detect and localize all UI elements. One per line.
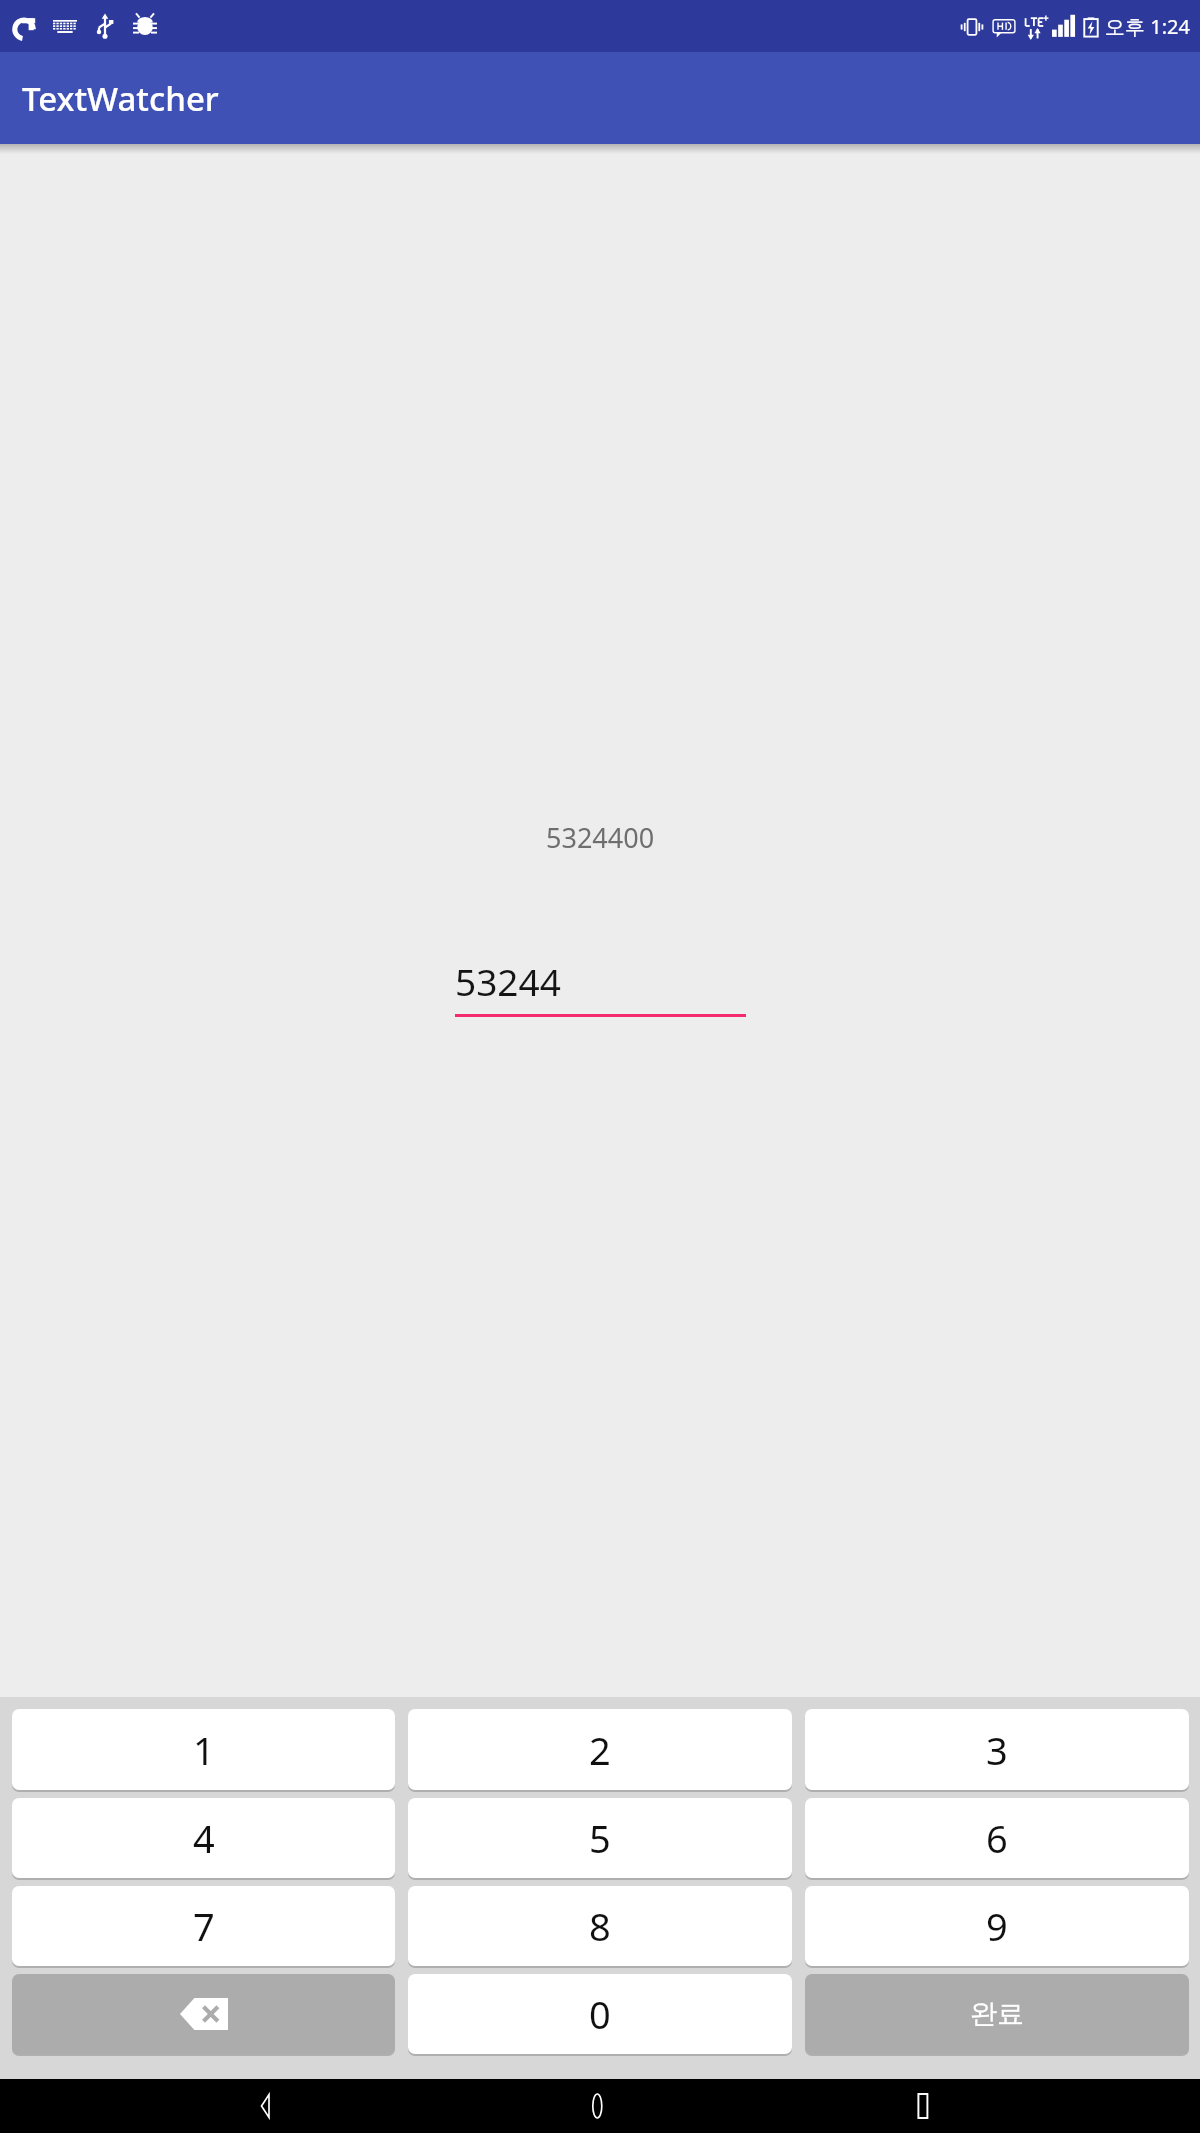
staticText: 5 bbox=[589, 1812, 611, 1864]
button[interactable]: 2 bbox=[408, 1709, 792, 1790]
staticText: 8 bbox=[589, 1900, 611, 1952]
staticText: 1 bbox=[193, 1724, 215, 1776]
staticText: 2 bbox=[589, 1724, 611, 1776]
staticText: 6 bbox=[986, 1812, 1008, 1864]
staticText: 5324400 bbox=[546, 819, 655, 856]
button[interactable]: 4 bbox=[12, 1798, 395, 1878]
button[interactable]: 3 bbox=[805, 1709, 1189, 1790]
button[interactable]: 7 bbox=[12, 1886, 395, 1966]
staticText: TextWatcher bbox=[22, 76, 219, 121]
staticText: 4 bbox=[193, 1812, 215, 1864]
staticText: 완료 bbox=[970, 1997, 1024, 2031]
staticText: 53244 bbox=[455, 956, 561, 1006]
button[interactable]: 6 bbox=[805, 1798, 1189, 1878]
button[interactable]: 5 bbox=[408, 1798, 792, 1878]
staticText: 7 bbox=[193, 1900, 215, 1952]
button[interactable]: 1 bbox=[12, 1709, 395, 1790]
staticText: 3 bbox=[986, 1724, 1008, 1776]
button[interactable]: 8 bbox=[408, 1886, 792, 1966]
button[interactable]: Recents bbox=[875, 2079, 975, 2133]
button[interactable]: Backspace bbox=[12, 1974, 395, 2054]
button[interactable]: Back bbox=[225, 2079, 325, 2133]
staticText: 0 bbox=[589, 1988, 611, 2040]
button[interactable]: 9 bbox=[805, 1886, 1189, 1966]
button[interactable]: 완료 bbox=[805, 1974, 1189, 2054]
staticText: 9 bbox=[986, 1900, 1008, 1952]
staticText: 오후 1:24 bbox=[1105, 13, 1190, 40]
button[interactable]: 0 bbox=[408, 1974, 792, 2054]
button[interactable]: Home bbox=[550, 2079, 650, 2133]
